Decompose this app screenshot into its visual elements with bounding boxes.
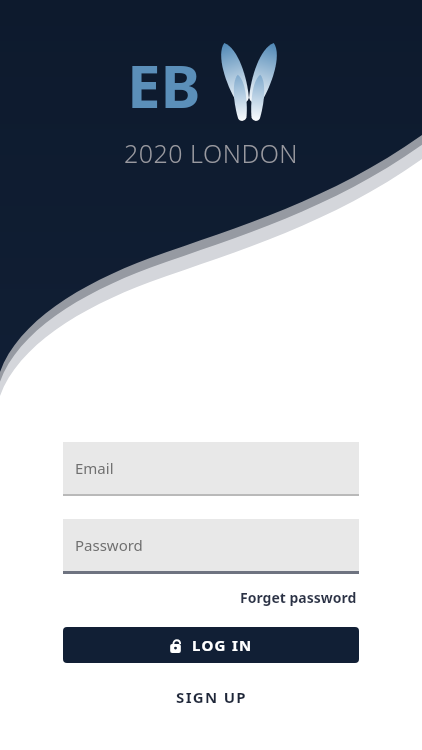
staticText: Password (75, 535, 143, 555)
other: Secure login (169, 637, 182, 653)
staticText: EB (127, 44, 201, 126)
staticText: LOG IN (192, 635, 253, 655)
button[interactable]: SIGN UP (63, 687, 359, 707)
staticText: Email (75, 458, 114, 478)
staticText: 2020 LONDON (124, 136, 299, 170)
staticText: Forget password (240, 588, 357, 607)
button[interactable]: Secure login (63, 627, 359, 663)
button[interactable]: Forget password (238, 586, 359, 609)
button[interactable]: Email (63, 442, 359, 496)
button[interactable]: Password (63, 519, 359, 574)
staticText: SIGN UP (176, 687, 247, 707)
